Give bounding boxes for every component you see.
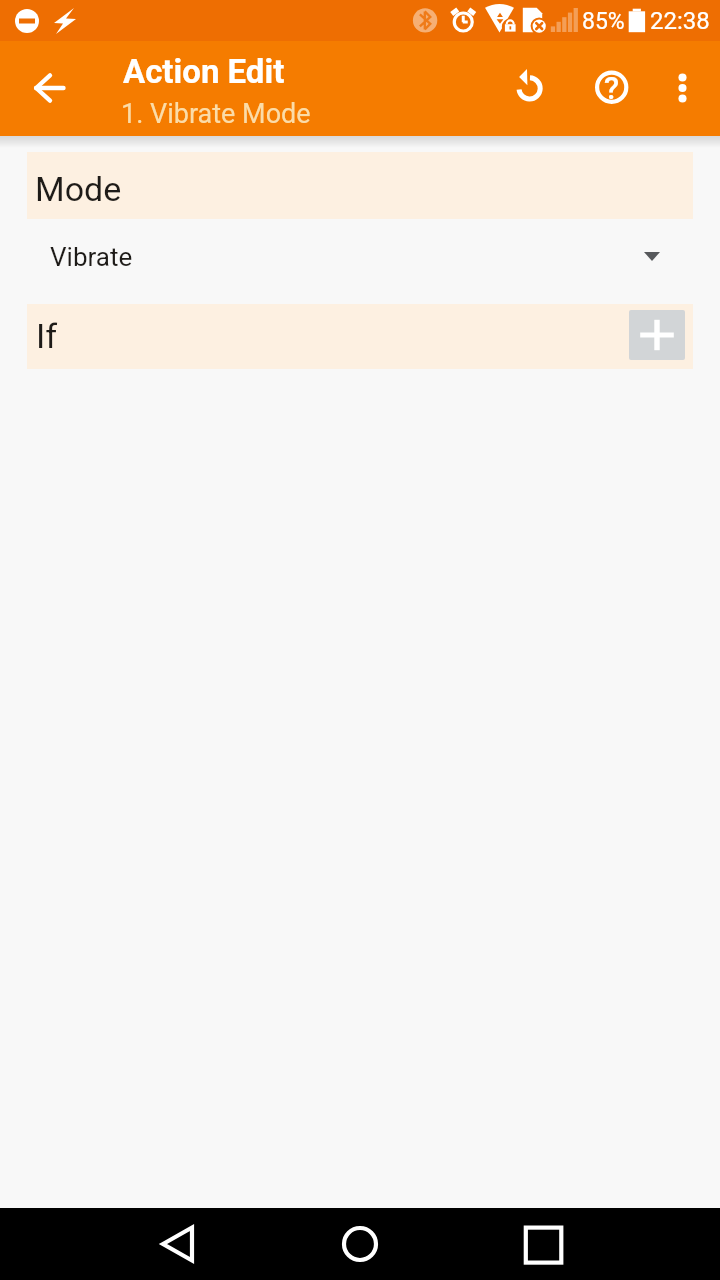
button[interactable]: More options (646, 52, 718, 124)
button[interactable]: Add condition (629, 310, 685, 360)
staticText: If (36, 316, 58, 356)
staticText: 85% (582, 8, 625, 35)
button[interactable]: Back (141, 1208, 213, 1280)
button[interactable]: Vibrate (0, 219, 720, 304)
staticText: 1. Vibrate Mode (121, 98, 311, 130)
staticText: Action Edit (123, 52, 285, 91)
staticText: ? (604, 70, 620, 106)
button[interactable]: Recent apps (506, 1208, 578, 1280)
button[interactable]: Home (324, 1208, 396, 1280)
staticText: Vibrate (50, 242, 133, 272)
button[interactable]: Navigate up (12, 52, 84, 124)
button[interactable]: Undo (493, 52, 565, 124)
button[interactable]: Help (575, 52, 647, 124)
button[interactable]: Mode (27, 152, 693, 219)
staticText: Mode (35, 169, 122, 209)
staticText: 22:38 (650, 7, 710, 35)
